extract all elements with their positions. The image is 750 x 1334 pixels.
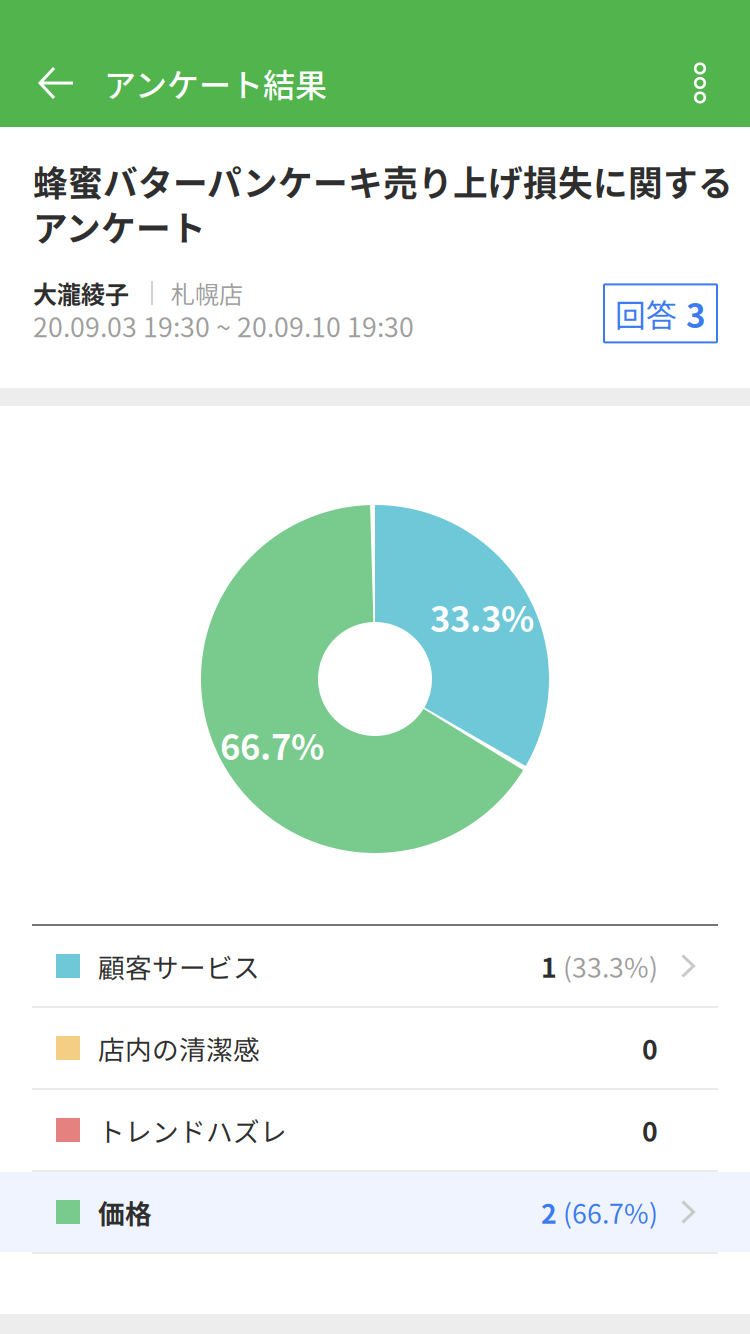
- staticText: 札幌店: [171, 275, 243, 310]
- staticText: 1: [541, 947, 557, 985]
- staticText: 2: [541, 1193, 557, 1231]
- staticText: 3: [686, 289, 706, 338]
- staticText: (66.7%): [557, 1193, 658, 1231]
- staticText: 回答: [615, 291, 677, 336]
- staticText: 0: [642, 1111, 658, 1149]
- button[interactable]: 価格: [0, 1172, 750, 1252]
- button[interactable]: トレンドハズレ: [0, 1090, 750, 1170]
- staticText: 0: [642, 1029, 658, 1067]
- staticText: 33.3%: [430, 592, 534, 642]
- staticText: 蜂蜜バターパンケーキ売り上げ損失に関するアンケート: [33, 156, 733, 251]
- staticText: 20.09.03 19:30 ~ 20.09.10 19:30: [33, 306, 414, 345]
- button[interactable]: 回答: [604, 284, 717, 342]
- button[interactable]: More options: [695, 39, 750, 127]
- staticText: トレンドハズレ: [98, 1111, 287, 1149]
- button[interactable]: 店内の清潔感: [0, 1008, 750, 1088]
- staticText: 顧客サービス: [98, 947, 260, 985]
- staticText: 価格: [98, 1193, 152, 1231]
- staticText: 大瀧綾子: [33, 275, 129, 310]
- staticText: 66.7%: [220, 720, 324, 770]
- staticText: (33.3%): [557, 947, 658, 985]
- staticText: 店内の清潔感: [98, 1029, 260, 1067]
- button[interactable]: 顧客サービス: [0, 926, 750, 1006]
- staticText: アンケート結果: [104, 60, 327, 106]
- button[interactable]: Back: [0, 39, 104, 127]
